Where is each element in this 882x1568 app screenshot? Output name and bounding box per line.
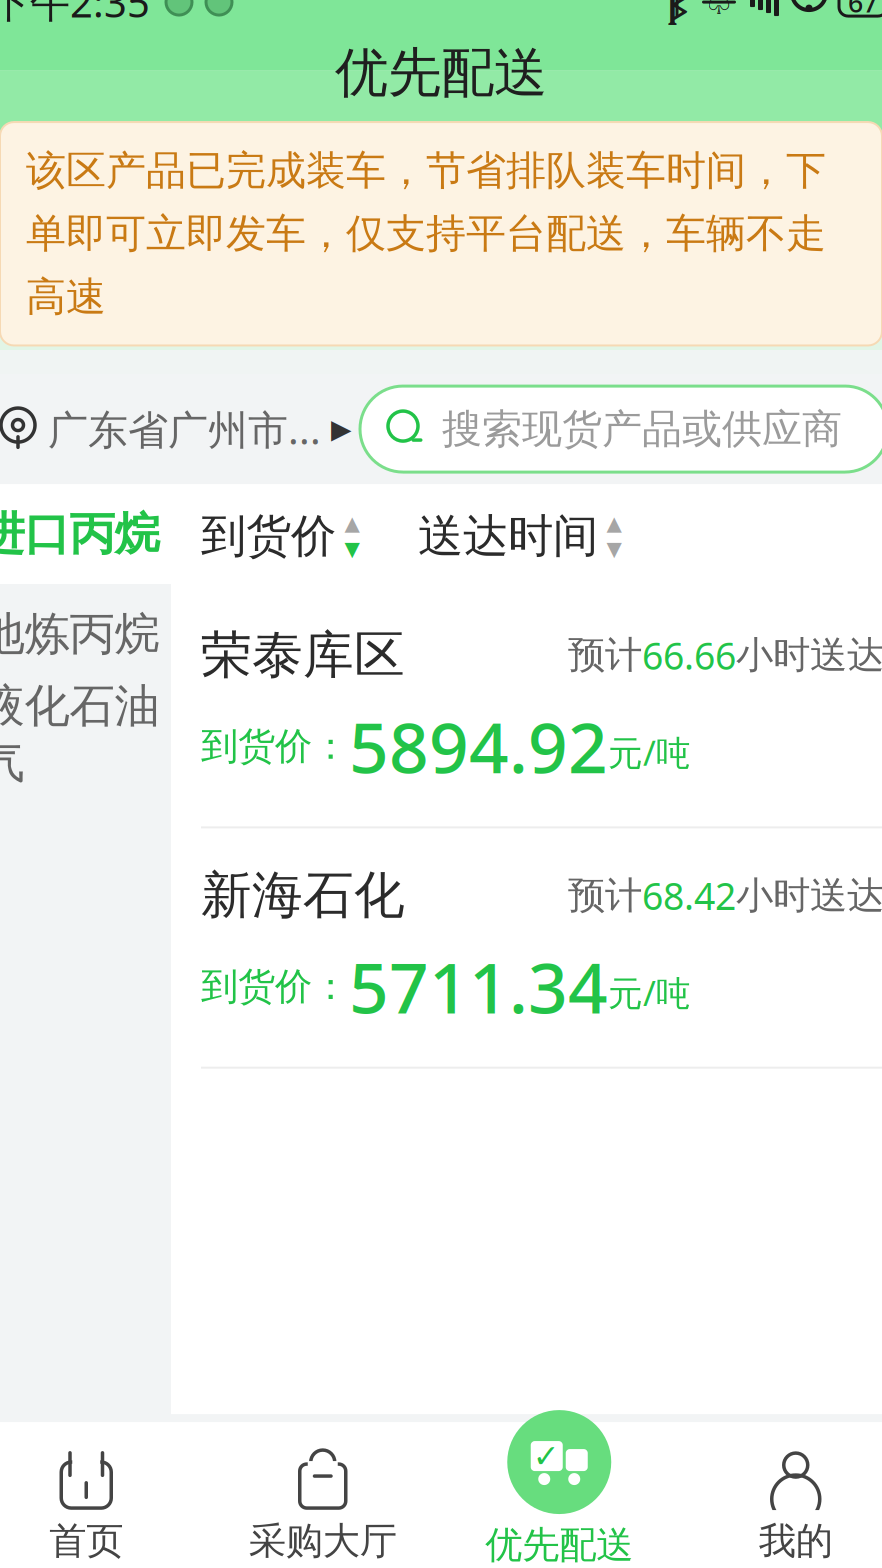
staticText: 优先配送 (485, 1522, 633, 1568)
staticText: 搜索现货产品或供应商 (442, 404, 842, 454)
staticText: 66.66 (642, 630, 736, 680)
staticText: 到货价： (201, 964, 349, 1010)
staticText: 送达时间 (418, 508, 598, 564)
staticText: 元/吨 (608, 970, 691, 1016)
staticText: 小时送达 (736, 873, 882, 918)
staticText: 优先配送 (335, 40, 547, 106)
button[interactable]: 进口丙烷 (0, 484, 171, 584)
button[interactable]: 广东省广州市... (0, 392, 352, 466)
staticText: 到货价： (201, 723, 349, 769)
button[interactable]: 送达时间 (418, 508, 624, 564)
staticText: 液化石油气 (0, 678, 159, 790)
staticText: 元/吨 (608, 729, 691, 775)
staticText: 67 (848, 0, 878, 20)
staticText: 新海石化 (201, 864, 405, 927)
staticText: 进口丙烷 (0, 506, 159, 562)
button[interactable]: 地炼丙烷 (0, 584, 171, 684)
staticText: 小时送达 (736, 632, 882, 678)
staticText: 地炼丙烷 (0, 606, 159, 662)
staticText: 我的 (759, 1518, 833, 1564)
button[interactable]: 首页 (0, 1426, 204, 1568)
staticText: ✓ (533, 1438, 560, 1474)
staticText: ▲ (344, 512, 359, 535)
staticText: ▼ (344, 538, 359, 560)
staticText: ▶ (331, 414, 352, 444)
staticText: ᛒ (667, 0, 687, 27)
staticText: 首页 (49, 1518, 123, 1564)
staticText: 预计 (568, 873, 642, 918)
staticText: ♤ (703, 0, 734, 22)
staticText: ▼ (606, 538, 621, 560)
staticText: 广东省广州市... (48, 402, 321, 456)
button[interactable]: 新海石化 (171, 828, 882, 1069)
button[interactable]: ✓ (441, 1422, 677, 1568)
button[interactable]: 采购大厅 (204, 1426, 441, 1568)
staticText: 预计 (568, 632, 642, 678)
staticText: 到货价 (201, 508, 336, 564)
button[interactable]: 到货价 (201, 508, 362, 564)
staticText: 5711.34 (349, 941, 608, 1033)
button[interactable]: 搜索现货产品或供应商 (360, 386, 882, 472)
staticText: 采购大厅 (249, 1518, 397, 1564)
staticText: 下午2:35 (0, 0, 150, 29)
staticText: 5894.92 (349, 700, 608, 792)
button[interactable]: 液化石油气 (0, 684, 171, 784)
button[interactable]: 荣泰库区 (171, 588, 882, 828)
staticText: 荣泰库区 (201, 624, 405, 686)
button[interactable]: 我的 (677, 1426, 882, 1568)
staticText: ▲ (606, 512, 621, 535)
staticText: 该区产品已完成装车，节省排队装车时间，下单即可立即发车，仅支持平台配送，车辆不走… (26, 146, 826, 321)
staticText: 68.42 (642, 871, 736, 920)
